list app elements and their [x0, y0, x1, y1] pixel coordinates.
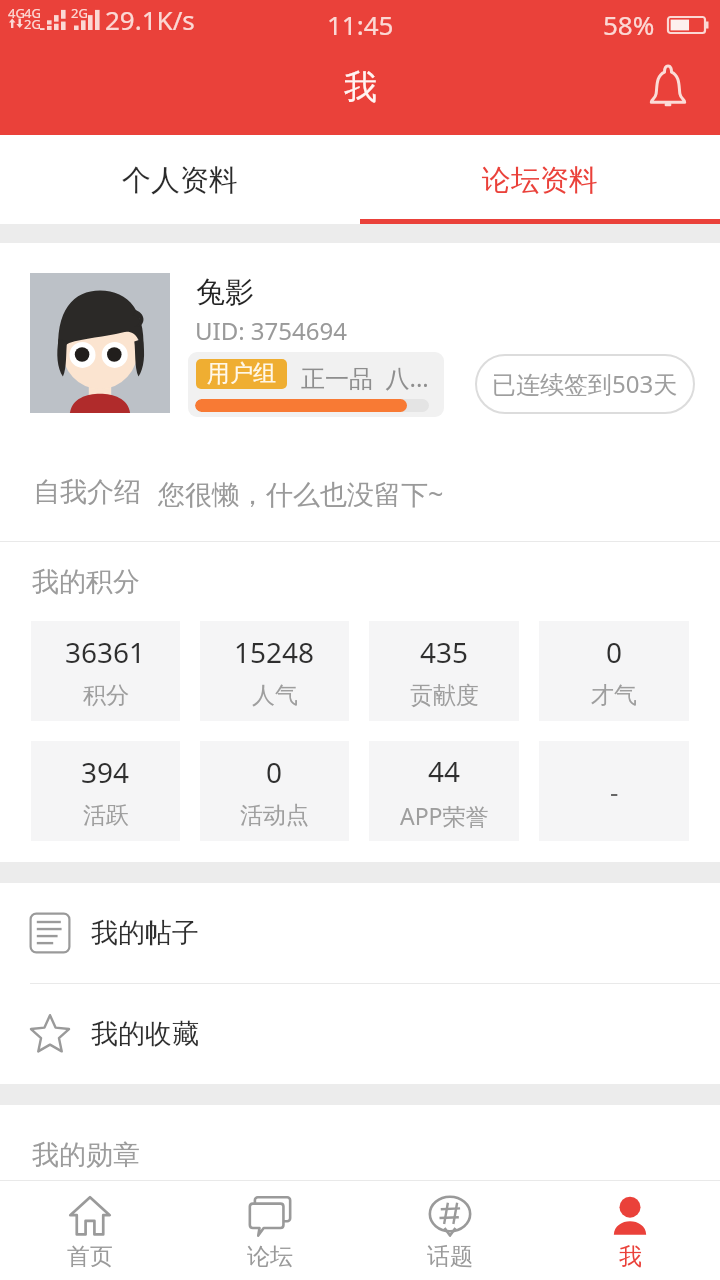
button[interactable]: 44 — [369, 741, 519, 841]
staticText: 我的勋章 — [32, 1138, 140, 1172]
staticText: 已连续签到503天 — [492, 367, 678, 400]
staticText: 435 — [420, 633, 469, 671]
button[interactable]: 我 — [540, 1181, 720, 1280]
staticText: 首页 — [67, 1242, 113, 1271]
button[interactable]: 论坛资料 — [360, 135, 720, 219]
staticText: 我的收藏 — [91, 1017, 199, 1051]
staticText: 我的帖子 — [91, 916, 199, 950]
button[interactable]: 个人资料 — [0, 135, 360, 219]
staticText: 4G — [24, 4, 41, 22]
staticText: 394 — [81, 753, 130, 791]
staticText: 活动点 — [240, 801, 309, 830]
staticText: 积分 — [83, 681, 129, 710]
staticText: 0 — [606, 633, 623, 671]
staticText: 论坛 — [247, 1242, 293, 1271]
button[interactable]: 0 — [539, 621, 689, 721]
staticText: APP荣誉 — [400, 800, 489, 831]
staticText: 15248 — [234, 633, 315, 671]
button[interactable]: 0 — [200, 741, 349, 841]
button[interactable]: 已连续签到503天 — [475, 354, 695, 414]
button[interactable]: 394 — [31, 741, 180, 841]
staticText: 论坛资料 — [482, 162, 598, 199]
staticText: 正一品 八... — [301, 361, 429, 394]
staticText: 活跃 — [83, 801, 129, 830]
staticText: 我的积分 — [32, 565, 140, 599]
button[interactable]: 435 — [369, 621, 519, 721]
button[interactable]: Notifications — [636, 58, 700, 122]
button[interactable]: 36361 — [31, 621, 180, 721]
staticText: 2G — [24, 15, 41, 33]
button[interactable]: 15248 — [200, 621, 349, 721]
staticText: 个人资料 — [122, 162, 238, 199]
staticText: 58% — [603, 7, 655, 42]
button[interactable]: 论坛 — [180, 1181, 360, 1280]
staticText: 我 — [619, 1242, 642, 1271]
staticText: 贡献度 — [410, 681, 479, 710]
staticText: 自我介绍 — [33, 475, 141, 509]
button[interactable]: 话题 — [360, 1181, 540, 1280]
staticText: 人气 — [252, 681, 298, 710]
staticText: 11:45 — [327, 7, 394, 42]
staticText: 2G — [71, 4, 88, 22]
staticText: 4G — [8, 4, 25, 22]
staticText: 您很懒，什么也没留下~ — [158, 475, 444, 512]
staticText: 才气 — [591, 681, 637, 710]
staticText: 兔影 — [196, 274, 254, 311]
button[interactable]: 首页 — [0, 1181, 180, 1280]
button[interactable]: 我的收藏 — [0, 984, 720, 1084]
staticText: - — [610, 774, 619, 809]
button[interactable]: 我的帖子 — [0, 883, 720, 983]
staticText: 44 — [428, 752, 461, 790]
staticText: UID: 3754694 — [195, 314, 347, 347]
staticText: 0 — [266, 753, 283, 791]
staticText: 我 — [344, 66, 377, 108]
staticText: 29.1K/s — [105, 2, 195, 37]
button[interactable]: - — [539, 741, 689, 841]
staticText: 话题 — [427, 1242, 473, 1271]
staticText: 36361 — [65, 633, 146, 671]
staticText: 用户组 — [207, 359, 276, 388]
